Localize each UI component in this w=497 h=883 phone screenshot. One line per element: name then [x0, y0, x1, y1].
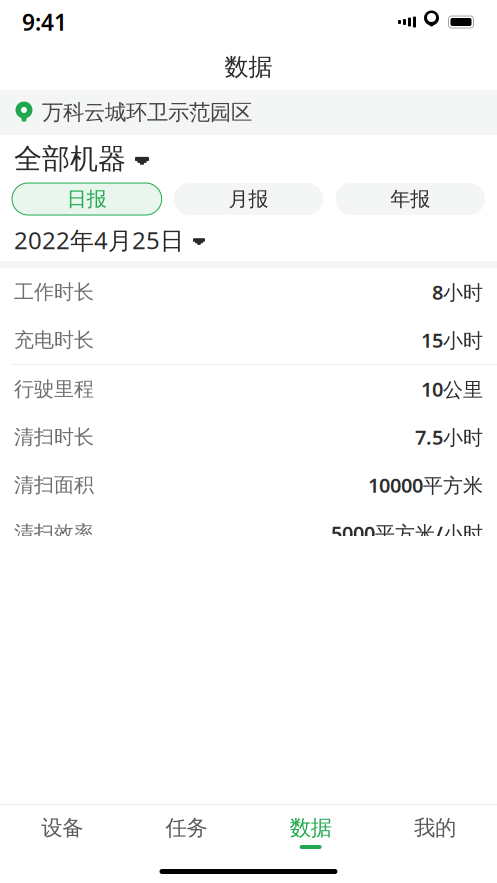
staticText: 清扫效率: [14, 521, 94, 545]
staticText: 年报: [390, 187, 430, 211]
staticText: 9:41: [22, 7, 67, 37]
staticText: 任务: [165, 815, 207, 841]
staticText: 月报: [228, 187, 268, 211]
staticText: 我的: [414, 815, 456, 841]
staticText: 数据: [224, 52, 272, 82]
button[interactable]: 日报: [12, 183, 162, 215]
staticText: 设备: [41, 815, 83, 841]
staticText: 10公里: [421, 376, 483, 402]
staticText: 充电时长: [14, 328, 94, 352]
staticText: 全部机器: [14, 142, 126, 176]
button[interactable]: 万科云城环卫示范园区: [0, 90, 497, 135]
staticText: 工作时长: [14, 280, 94, 304]
button[interactable]: 全部机器: [0, 135, 497, 183]
button[interactable]: 设备: [0, 805, 124, 855]
staticText: 10000平方米: [368, 472, 483, 498]
button[interactable]: 2022年4月25日: [0, 219, 497, 261]
button[interactable]: 数据: [248, 805, 373, 855]
staticText: 日报: [67, 187, 107, 211]
staticText: 数据: [290, 815, 332, 841]
button[interactable]: 月报: [174, 183, 323, 215]
staticText: 2022年4月25日: [14, 224, 184, 256]
staticText: 15小时: [421, 327, 483, 353]
button[interactable]: 我的: [373, 805, 497, 855]
button[interactable]: 任务: [124, 805, 248, 855]
staticText: 7.5小时: [415, 424, 483, 450]
staticText: 清扫时长: [14, 425, 94, 449]
staticText: 清扫面积: [14, 473, 94, 497]
button[interactable]: 年报: [335, 183, 485, 215]
staticText: 万科云城环卫示范园区: [42, 99, 252, 126]
staticText: 5000平方米/小时: [331, 520, 483, 546]
staticText: 行驶里程: [14, 377, 94, 401]
staticText: 8小时: [432, 279, 483, 305]
